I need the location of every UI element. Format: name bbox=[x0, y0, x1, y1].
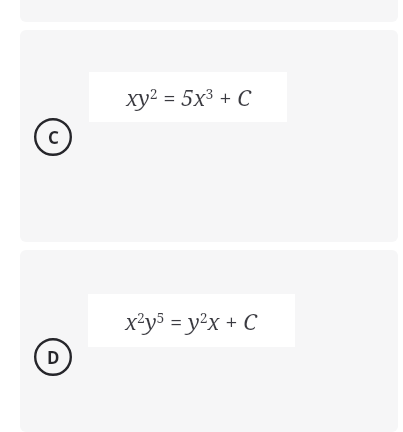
staticText: xy2 = 5x3 + C bbox=[126, 82, 251, 112]
staticText: C bbox=[48, 126, 59, 149]
button[interactable]: Option D bbox=[34, 338, 72, 376]
button[interactable]: Option C bbox=[34, 118, 72, 156]
button[interactable]: xy2 = 5x3 + C bbox=[20, 30, 398, 242]
button[interactable]: x2y5 = y2x + C bbox=[20, 250, 398, 432]
staticText: x2y5 = y2x + C bbox=[125, 306, 258, 336]
staticText: D bbox=[47, 346, 60, 369]
